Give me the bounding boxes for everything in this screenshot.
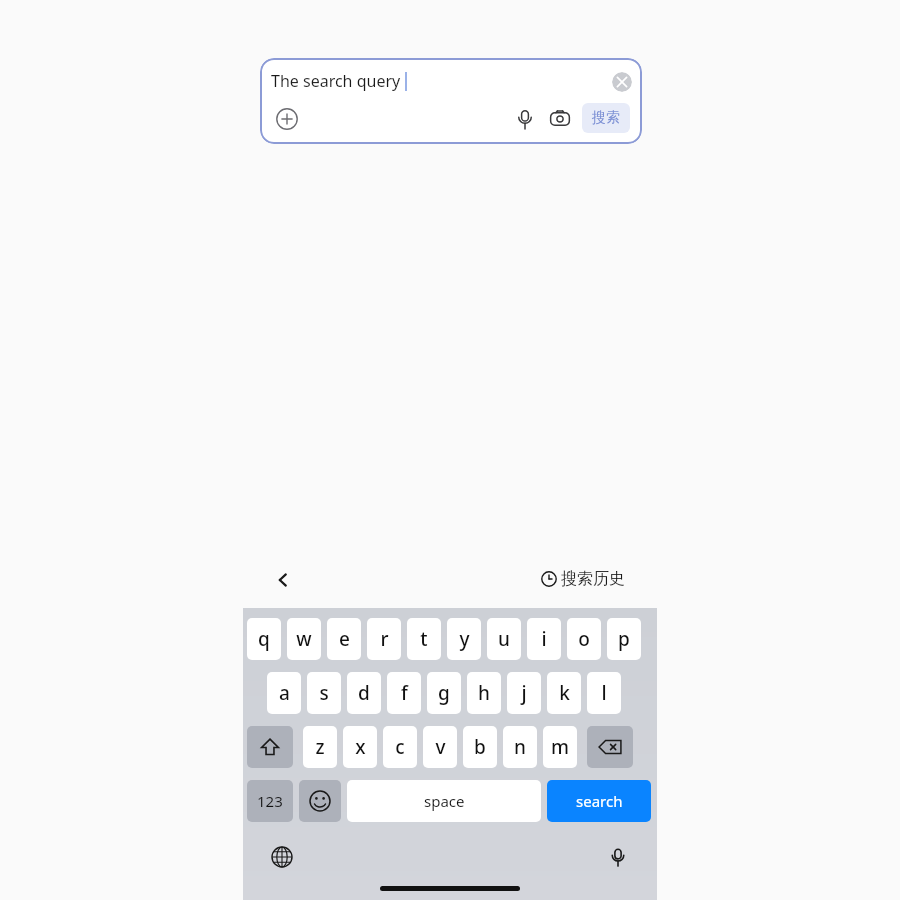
button[interactable]: i: [527, 618, 561, 660]
button[interactable]: l: [587, 672, 621, 714]
other: Shift: [259, 736, 281, 758]
button[interactable]: q: [247, 618, 281, 660]
staticText: z: [315, 734, 325, 760]
button[interactable]: v: [423, 726, 457, 768]
staticText: t: [420, 626, 428, 652]
staticText: q: [258, 626, 270, 652]
staticText: search: [576, 791, 623, 811]
other: Backspace: [597, 734, 623, 760]
staticText: 搜索历史: [561, 569, 625, 589]
staticText: x: [355, 734, 366, 760]
button[interactable]: Emoji: [299, 780, 341, 822]
button[interactable]: Clear text: [612, 72, 632, 92]
staticText: 123: [257, 791, 283, 811]
button[interactable]: z: [303, 726, 337, 768]
button[interactable]: Back: [261, 558, 305, 602]
button[interactable]: k: [547, 672, 581, 714]
button[interactable]: t: [407, 618, 441, 660]
button[interactable]: search: [547, 780, 651, 822]
button[interactable]: w: [287, 618, 321, 660]
staticText: e: [339, 626, 350, 652]
button[interactable]: a: [267, 672, 301, 714]
button[interactable]: Shift: [247, 726, 293, 768]
staticText: 搜索: [592, 109, 620, 127]
button[interactable]: y: [447, 618, 481, 660]
button[interactable]: m: [543, 726, 577, 768]
staticText: g: [438, 680, 450, 706]
button[interactable]: Switch keyboard: [265, 840, 299, 874]
staticText: j: [521, 680, 527, 706]
staticText: f: [401, 680, 408, 706]
other: Emoji: [309, 790, 331, 812]
button[interactable]: g: [427, 672, 461, 714]
button[interactable]: space: [347, 780, 541, 822]
button[interactable]: Backspace: [587, 726, 633, 768]
staticText: m: [551, 734, 569, 760]
button[interactable]: e: [327, 618, 361, 660]
button[interactable]: r: [367, 618, 401, 660]
button[interactable]: n: [503, 726, 537, 768]
button[interactable]: Voice search: [512, 106, 538, 132]
staticText: v: [435, 734, 446, 760]
button[interactable]: u: [487, 618, 521, 660]
staticText: n: [514, 734, 526, 760]
staticText: u: [498, 626, 510, 652]
staticText: h: [478, 680, 490, 706]
button[interactable]: 搜索: [582, 103, 630, 133]
staticText: c: [395, 734, 405, 760]
button[interactable]: b: [463, 726, 497, 768]
staticText: a: [279, 680, 290, 706]
button[interactable]: x: [343, 726, 377, 768]
button[interactable]: Dictation: [601, 840, 635, 874]
staticText: o: [578, 626, 590, 652]
button[interactable]: 搜索历史: [535, 560, 631, 598]
button[interactable]: f: [387, 672, 421, 714]
button[interactable]: 123: [247, 780, 293, 822]
staticText: r: [380, 626, 389, 652]
staticText: w: [296, 626, 312, 652]
staticText: k: [559, 680, 570, 706]
staticText: p: [618, 626, 630, 652]
button[interactable]: h: [467, 672, 501, 714]
staticText: d: [358, 680, 370, 706]
button[interactable]: Image search: [547, 106, 573, 132]
button[interactable]: j: [507, 672, 541, 714]
button[interactable]: c: [383, 726, 417, 768]
staticText: space: [424, 791, 465, 811]
button[interactable]: d: [347, 672, 381, 714]
staticText: s: [319, 680, 329, 706]
staticText: l: [601, 680, 607, 706]
button[interactable]: s: [307, 672, 341, 714]
button[interactable]: o: [567, 618, 601, 660]
staticText: The search query: [271, 70, 401, 92]
staticText: y: [459, 626, 470, 652]
staticText: b: [474, 734, 486, 760]
staticText: i: [541, 626, 547, 652]
button[interactable]: p: [607, 618, 641, 660]
button[interactable]: Add: [274, 106, 300, 132]
